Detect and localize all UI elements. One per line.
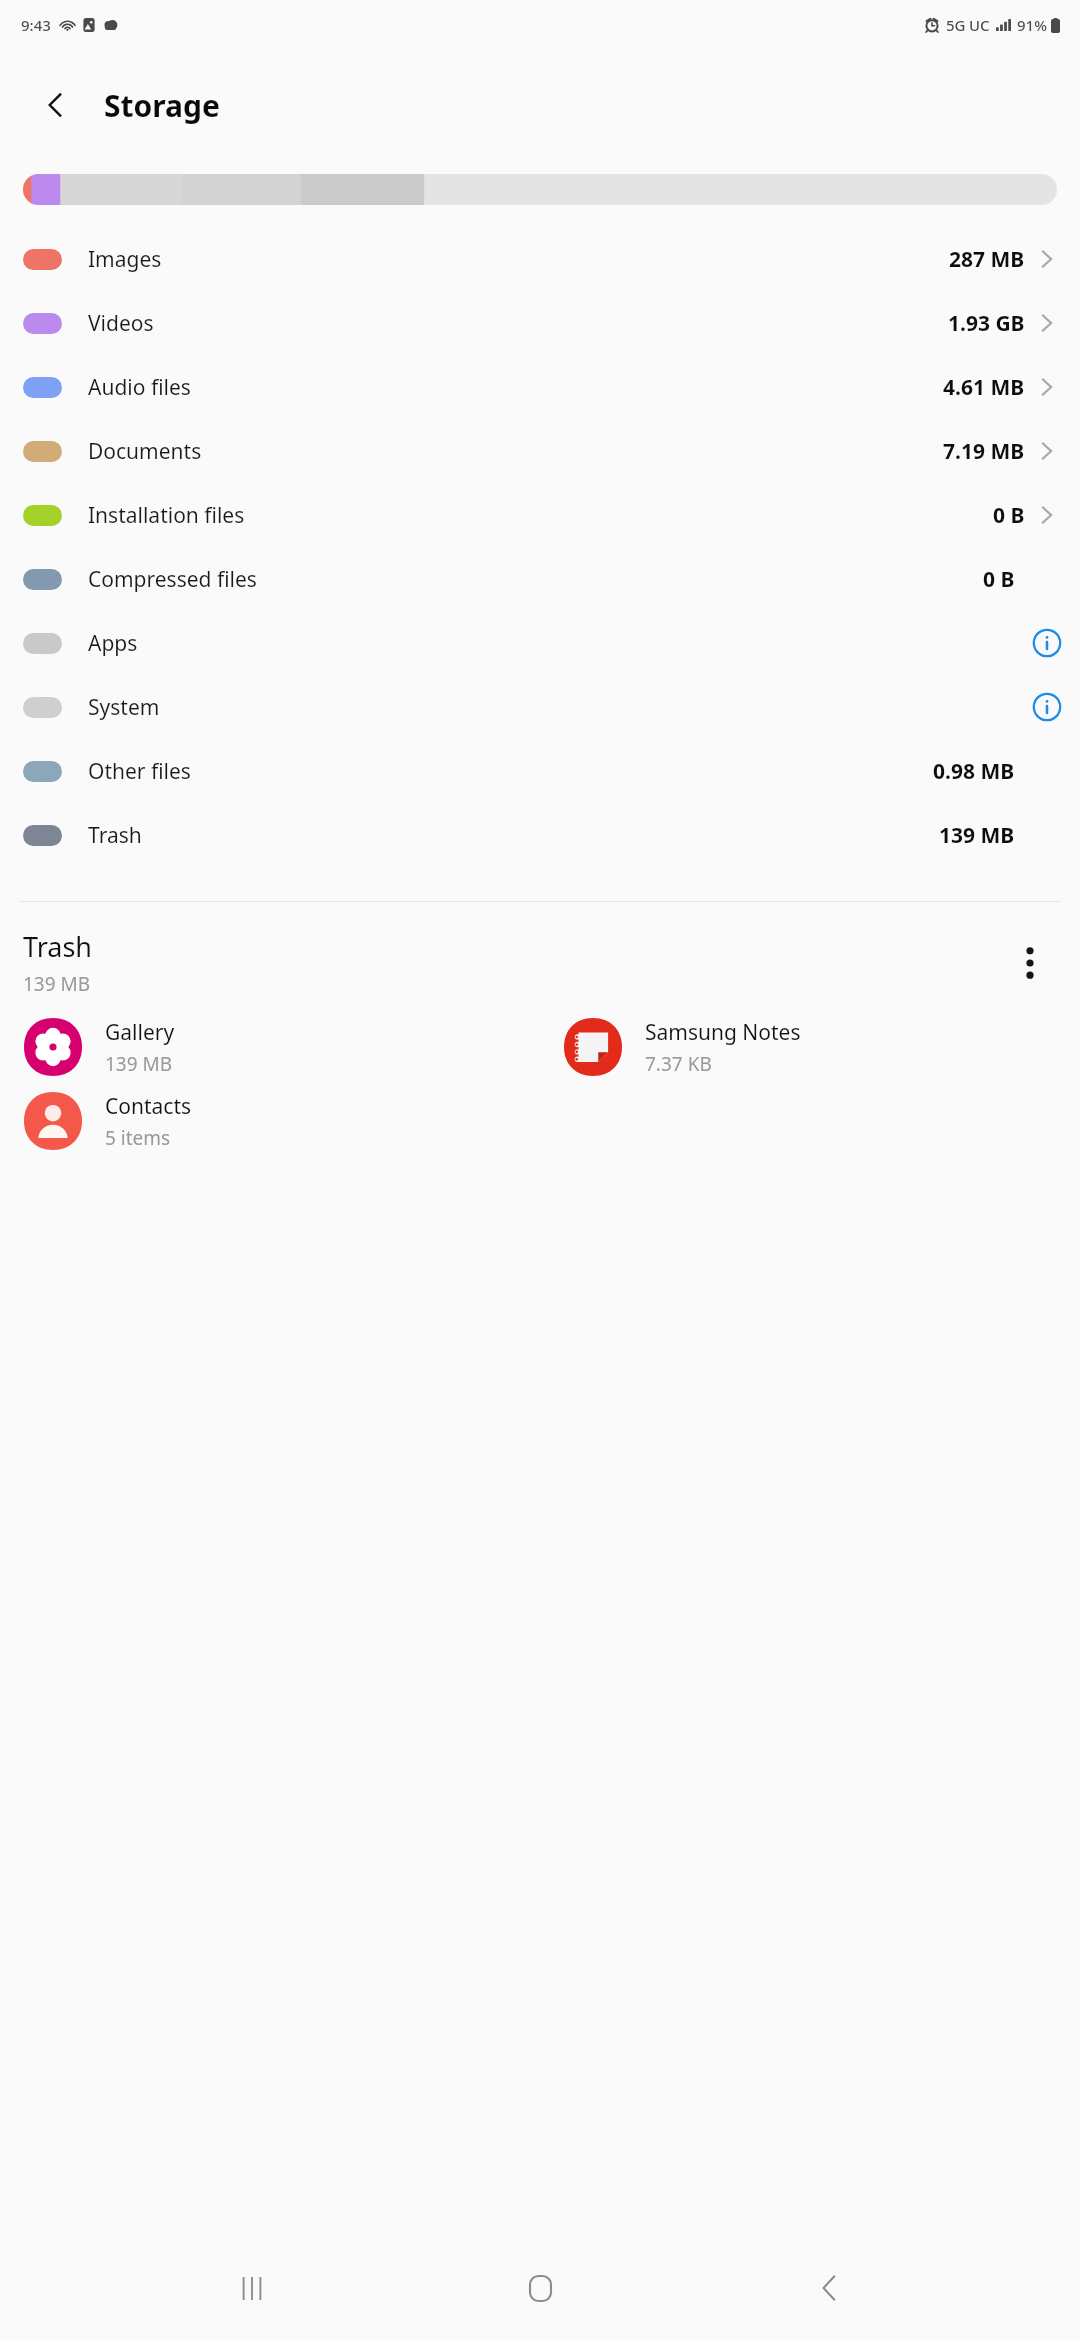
button[interactable]: More options [1003,936,1057,990]
staticText: Apps [88,629,138,658]
button[interactable]: System [0,675,1080,739]
staticText: 9:43 [21,15,51,35]
button[interactable]: Videos [0,291,1080,355]
staticText: 5G [946,15,966,35]
staticText: 0.98 MB [933,757,1015,786]
staticText: 139 MB [105,1051,173,1077]
staticText: Installation files [88,501,245,530]
button[interactable]: Info [1031,691,1063,723]
staticText: 91% [1017,15,1047,35]
button[interactable]: Gallery [0,1017,540,1077]
staticText: System [88,693,160,722]
staticText: Compressed files [88,565,257,594]
staticText: 7.19 MB [943,437,1025,466]
button[interactable]: Compressed files [0,547,1080,611]
button[interactable]: Installation files [0,483,1080,547]
button[interactable]: Other files [0,739,1080,803]
staticText: Storage [104,85,220,126]
staticText: 4.61 MB [943,373,1025,402]
staticText: 139 MB [23,971,91,997]
staticText: Contacts [105,1092,192,1121]
staticText: UC [969,15,990,35]
staticText: Audio files [88,373,191,402]
staticText: 5 items [105,1125,171,1151]
button[interactable]: Apps [0,611,1080,675]
staticText: 7.37 KB [645,1051,712,1077]
staticText: Trash [88,821,142,850]
staticText: Gallery [105,1018,175,1047]
staticText: Samsung Notes [645,1018,801,1047]
staticText: 0 B [993,501,1025,530]
staticText: 1.93 GB [948,309,1025,338]
button[interactable]: Samsung Notes [540,1017,1080,1077]
button[interactable]: Contacts [0,1091,540,1151]
staticText: Other files [88,757,191,786]
staticText: 287 MB [949,245,1025,274]
button[interactable]: Recents [215,2251,289,2325]
button[interactable]: Images [0,227,1080,291]
staticText: Trash [23,928,93,965]
button[interactable]: Audio files [0,355,1080,419]
staticText: Documents [88,437,202,466]
button[interactable]: Trash [0,803,1080,867]
staticText: Videos [88,309,154,338]
button[interactable]: Home [503,2251,577,2325]
staticText: 139 MB [939,821,1015,850]
button[interactable]: Info [1031,627,1063,659]
button[interactable]: Back [792,2251,866,2325]
staticText: 0 B [983,565,1015,594]
button[interactable]: Back [30,79,82,131]
button[interactable]: Documents [0,419,1080,483]
staticText: Images [88,245,162,274]
